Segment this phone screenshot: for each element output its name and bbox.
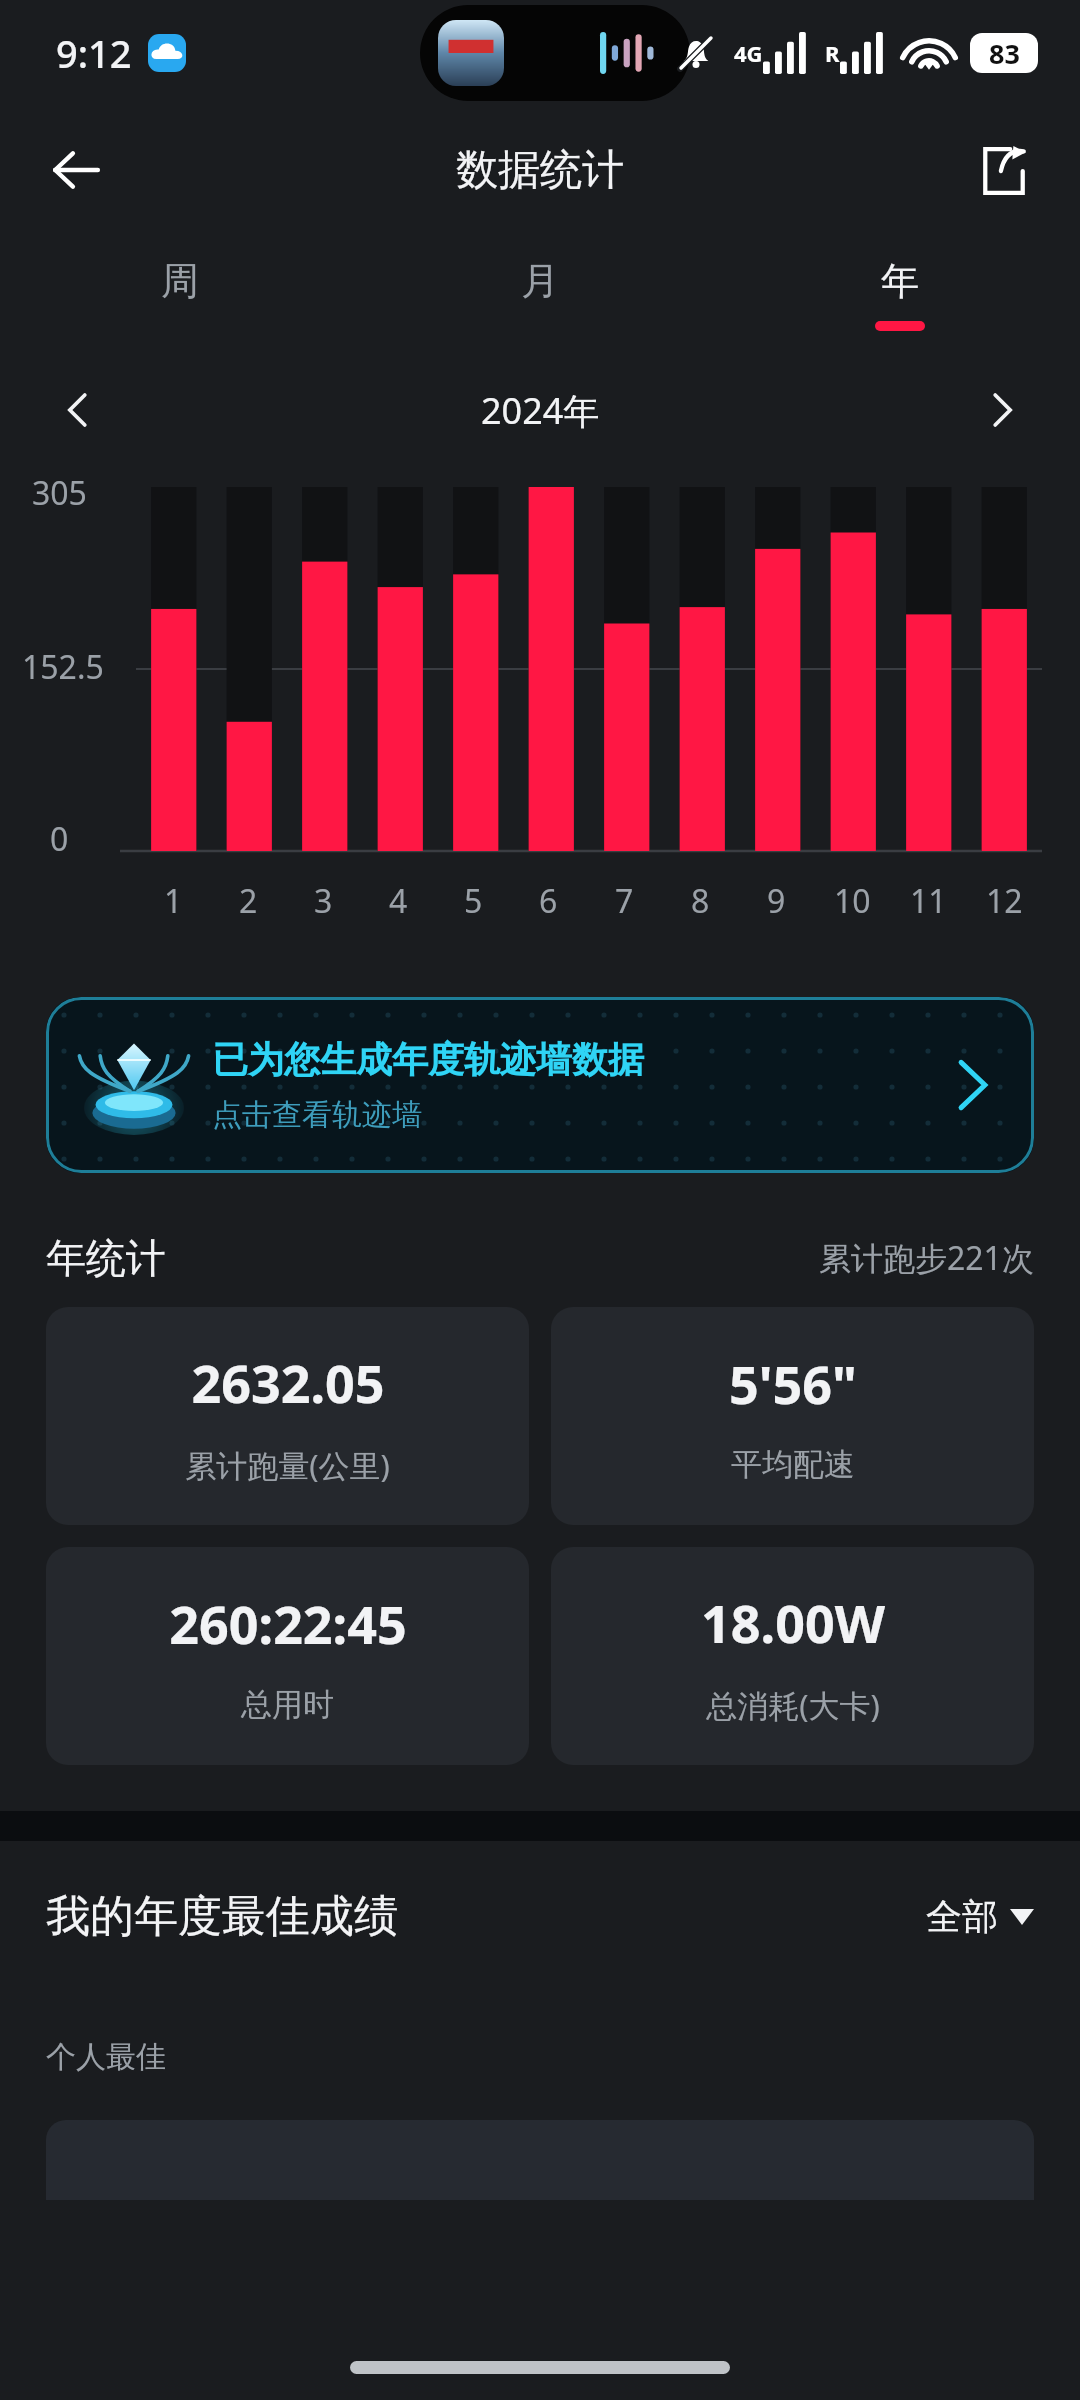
staticText: 9	[767, 879, 786, 923]
button[interactable]: 周	[0, 235, 360, 321]
button[interactable]: 260:22:45	[46, 1547, 529, 1765]
staticText: 年统计	[46, 1233, 166, 1283]
staticText: 个人最佳	[46, 2038, 166, 2076]
staticText: 18.00W	[701, 1587, 885, 1658]
staticText: 305	[32, 471, 87, 515]
staticText: 累计跑步221次	[819, 1236, 1034, 1280]
staticText: 7	[615, 879, 634, 923]
button[interactable]: Previous year	[42, 374, 114, 446]
staticText: 2024年	[481, 386, 600, 435]
staticText: 总用时	[241, 1685, 334, 1724]
staticText: 5	[464, 879, 483, 923]
staticText: 累计跑量(公里)	[185, 1444, 390, 1486]
button[interactable]: Share	[962, 128, 1046, 212]
staticText: 9:12	[56, 27, 132, 79]
staticText: 我的年度最佳成绩	[46, 1889, 398, 1944]
staticText: 6	[539, 879, 558, 923]
button[interactable]: 月	[360, 235, 720, 321]
button[interactable]: 年	[720, 235, 1080, 331]
staticText: R	[825, 38, 840, 68]
staticText: 点击查看轨迹墙	[212, 1096, 422, 1134]
button[interactable]: 5'56"	[551, 1307, 1034, 1525]
staticText: 83	[989, 35, 1020, 72]
staticText: 260:22:45	[169, 1588, 407, 1659]
button[interactable]: Back	[34, 128, 118, 212]
staticText: 11	[910, 879, 947, 923]
staticText: 0	[50, 817, 69, 861]
staticText: 10	[834, 879, 871, 923]
staticText: 全部	[926, 1894, 998, 1939]
staticText: 已为您生成年度轨迹墙数据	[212, 1037, 644, 1082]
staticText: 5'56"	[729, 1348, 857, 1419]
staticText: 年	[881, 257, 919, 305]
button[interactable]: 已为您生成年度轨迹墙数据	[46, 997, 1034, 1173]
staticText: 152.5	[22, 645, 104, 689]
staticText: 总消耗(大卡)	[706, 1684, 880, 1726]
staticText: 周	[161, 257, 199, 305]
staticText: 数据统计	[456, 144, 624, 197]
button[interactable]: 18.00W	[551, 1547, 1034, 1765]
staticText: 2	[239, 879, 258, 923]
staticText: 2632.05	[191, 1347, 385, 1418]
staticText: 平均配速	[731, 1445, 855, 1484]
staticText: 4	[389, 879, 408, 923]
staticText: 8	[691, 879, 710, 923]
staticText: 月	[521, 257, 559, 305]
button[interactable]: Next year	[966, 374, 1038, 446]
button[interactable]: 2632.05	[46, 1307, 529, 1525]
staticText: 4G	[734, 38, 763, 68]
staticText: 1	[164, 879, 183, 923]
staticText: 12	[986, 879, 1023, 923]
staticText: 3	[314, 879, 333, 923]
button[interactable]: 全部	[926, 1894, 1034, 1939]
